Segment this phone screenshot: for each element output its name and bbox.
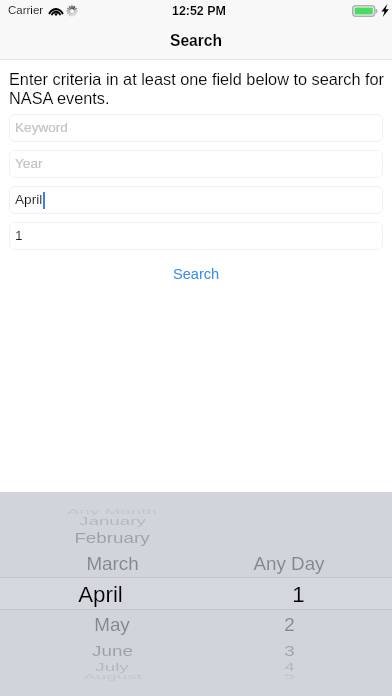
button[interactable]: Search <box>149 263 244 285</box>
staticText: Year <box>15 156 43 171</box>
staticText: March <box>86 554 139 573</box>
staticText: Search <box>170 32 223 49</box>
button[interactable]: April <box>9 186 383 214</box>
button[interactable]: Keyword <box>9 114 383 142</box>
staticText: 2 <box>284 615 295 634</box>
staticText: 12:52 PM <box>172 4 226 18</box>
staticText: Any Day <box>253 554 325 573</box>
staticText: Keyword <box>15 120 68 135</box>
staticText: April <box>78 582 123 607</box>
staticText: 4 <box>284 661 295 674</box>
staticText: 1 <box>292 582 305 607</box>
staticText: 3 <box>284 642 295 659</box>
staticText: January <box>79 515 146 528</box>
button[interactable]: Year <box>9 150 383 178</box>
staticText: February <box>74 529 150 546</box>
staticText: June <box>92 642 133 659</box>
staticText: 1 <box>15 228 23 243</box>
staticText: July <box>95 661 129 674</box>
button[interactable]: 1 <box>9 222 383 250</box>
staticText: August <box>83 672 142 680</box>
staticText: Carrier <box>8 4 44 17</box>
staticText: April <box>15 192 43 207</box>
staticText: Search <box>173 266 220 282</box>
staticText: Enter criteria in at least one field bel… <box>9 70 385 108</box>
staticText: Any Month <box>67 507 157 515</box>
staticText: 5 <box>284 672 295 680</box>
button[interactable]: Any Month <box>0 492 392 696</box>
staticText: May <box>94 615 130 634</box>
